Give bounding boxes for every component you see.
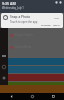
button[interactable]: Review Notes <box>8 45 64 49</box>
button[interactable]: Snap a Photo <box>1 13 63 28</box>
staticText: Wednesday, July 1 <box>2 6 24 10</box>
staticText: now <box>54 16 59 19</box>
button[interactable]: Item <box>2 76 6 80</box>
staticText: Snap a Photo <box>10 15 31 19</box>
button[interactable]: Home <box>22 93 43 100</box>
button[interactable]: OPEN <box>52 23 61 26</box>
staticText: Review Notes <box>15 45 32 49</box>
button[interactable]: Project Tracker <box>8 33 64 37</box>
staticText: 9:35 AM <box>2 1 16 6</box>
button[interactable]: Back <box>0 93 22 100</box>
button[interactable]: Recents <box>43 93 64 100</box>
staticText: Touch to open the app <box>10 20 38 24</box>
staticText: OPEN <box>53 23 60 26</box>
button[interactable]: SNOOZE <box>40 23 52 26</box>
staticText: SNOOZE <box>41 23 51 26</box>
button[interactable]: Item <box>2 54 6 58</box>
button[interactable]: Item <box>2 65 6 69</box>
